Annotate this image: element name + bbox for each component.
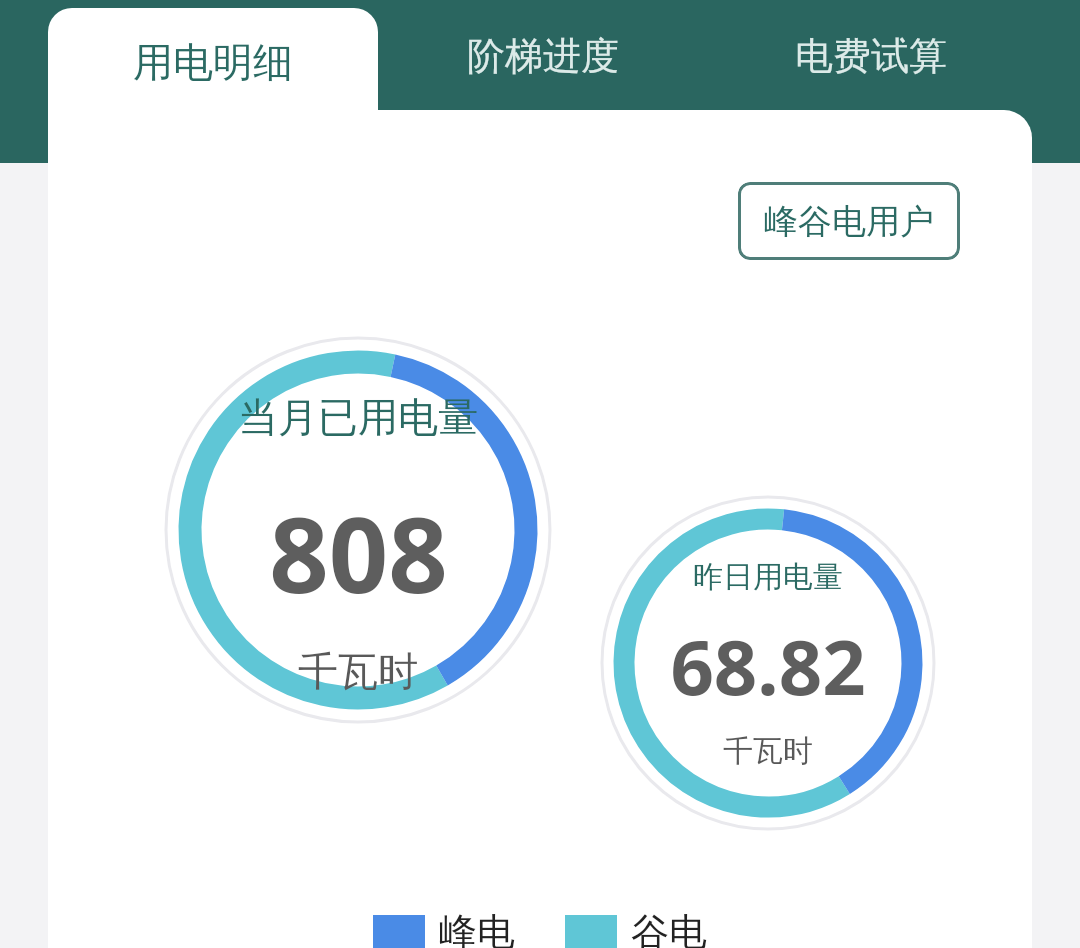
staticText: 阶梯进度 — [467, 32, 619, 80]
staticText: 千瓦时 — [298, 646, 418, 696]
staticText: 68.82 — [670, 614, 866, 718]
button[interactable]: 峰谷电用户 — [738, 182, 960, 260]
staticText: 当月已用电量 — [238, 392, 478, 442]
staticText: 昨日用电量 — [693, 558, 843, 596]
button[interactable]: 电费试算 — [740, 18, 1002, 94]
staticText: 808 — [269, 482, 448, 624]
staticText: 电费试算 — [795, 32, 947, 80]
staticText: 峰电 — [439, 908, 515, 948]
staticText: 谷电 — [631, 908, 707, 948]
staticText: 千瓦时 — [723, 732, 813, 770]
button[interactable]: 用电明细 — [48, 8, 378, 116]
staticText: 峰谷电用户 — [764, 200, 934, 243]
staticText: 用电明细 — [133, 37, 293, 87]
button[interactable]: 阶梯进度 — [412, 18, 674, 94]
